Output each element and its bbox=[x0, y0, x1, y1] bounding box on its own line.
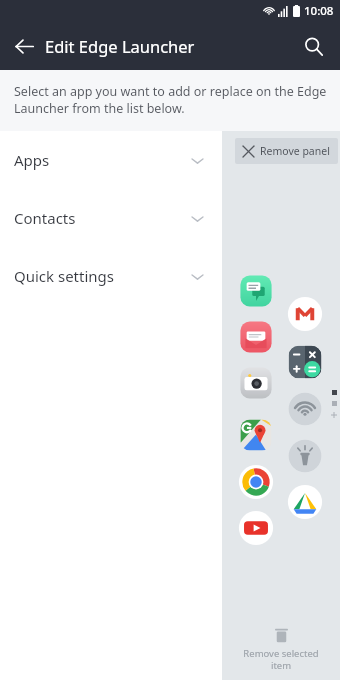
button[interactable]: Gmail bbox=[286, 295, 324, 333]
button[interactable]: Search bbox=[294, 27, 332, 65]
button[interactable]: Back bbox=[5, 27, 43, 65]
button[interactable]: Chrome bbox=[237, 463, 275, 501]
button[interactable]: Contacts bbox=[0, 189, 222, 247]
button[interactable]: Apps bbox=[0, 131, 222, 189]
button[interactable]: YouTube bbox=[237, 509, 275, 547]
button[interactable]: Email bbox=[237, 318, 275, 356]
staticText: Remove selected item bbox=[243, 647, 319, 672]
button[interactable]: Wi-Fi bbox=[286, 390, 324, 428]
button[interactable]: Calculator bbox=[286, 343, 324, 381]
staticText: Apps bbox=[14, 150, 50, 170]
button[interactable]: Quick settings bbox=[0, 247, 222, 305]
button[interactable]: Remove selected item bbox=[243, 627, 319, 672]
button[interactable]: Maps bbox=[237, 416, 275, 454]
staticText: Contacts bbox=[14, 208, 76, 228]
staticText: Remove panel bbox=[260, 144, 330, 158]
button[interactable]: Remove panel bbox=[235, 138, 338, 164]
staticText: 10:08 bbox=[304, 3, 334, 19]
staticText: Select an app you want to add or replace… bbox=[14, 83, 328, 117]
staticText: Quick settings bbox=[14, 266, 114, 286]
button[interactable]: Drive bbox=[286, 483, 324, 521]
staticText: Edit Edge Launcher bbox=[45, 35, 195, 57]
button[interactable]: Camera bbox=[237, 364, 275, 402]
button[interactable]: Messages bbox=[237, 272, 275, 310]
button[interactable]: Flashlight bbox=[286, 437, 324, 475]
